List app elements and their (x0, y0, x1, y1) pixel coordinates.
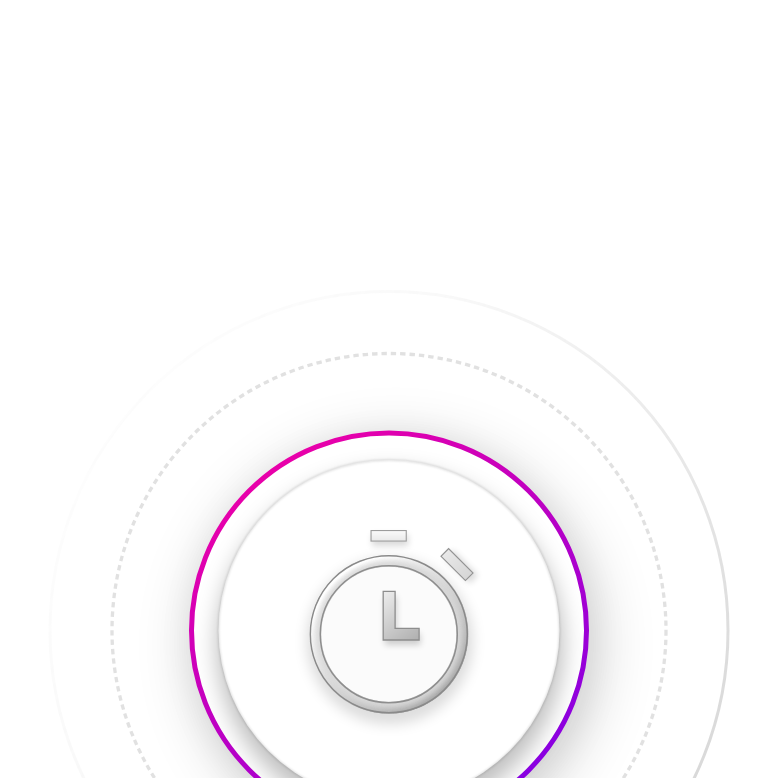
button[interactable]: Stopwatch (0, 0, 778, 778)
